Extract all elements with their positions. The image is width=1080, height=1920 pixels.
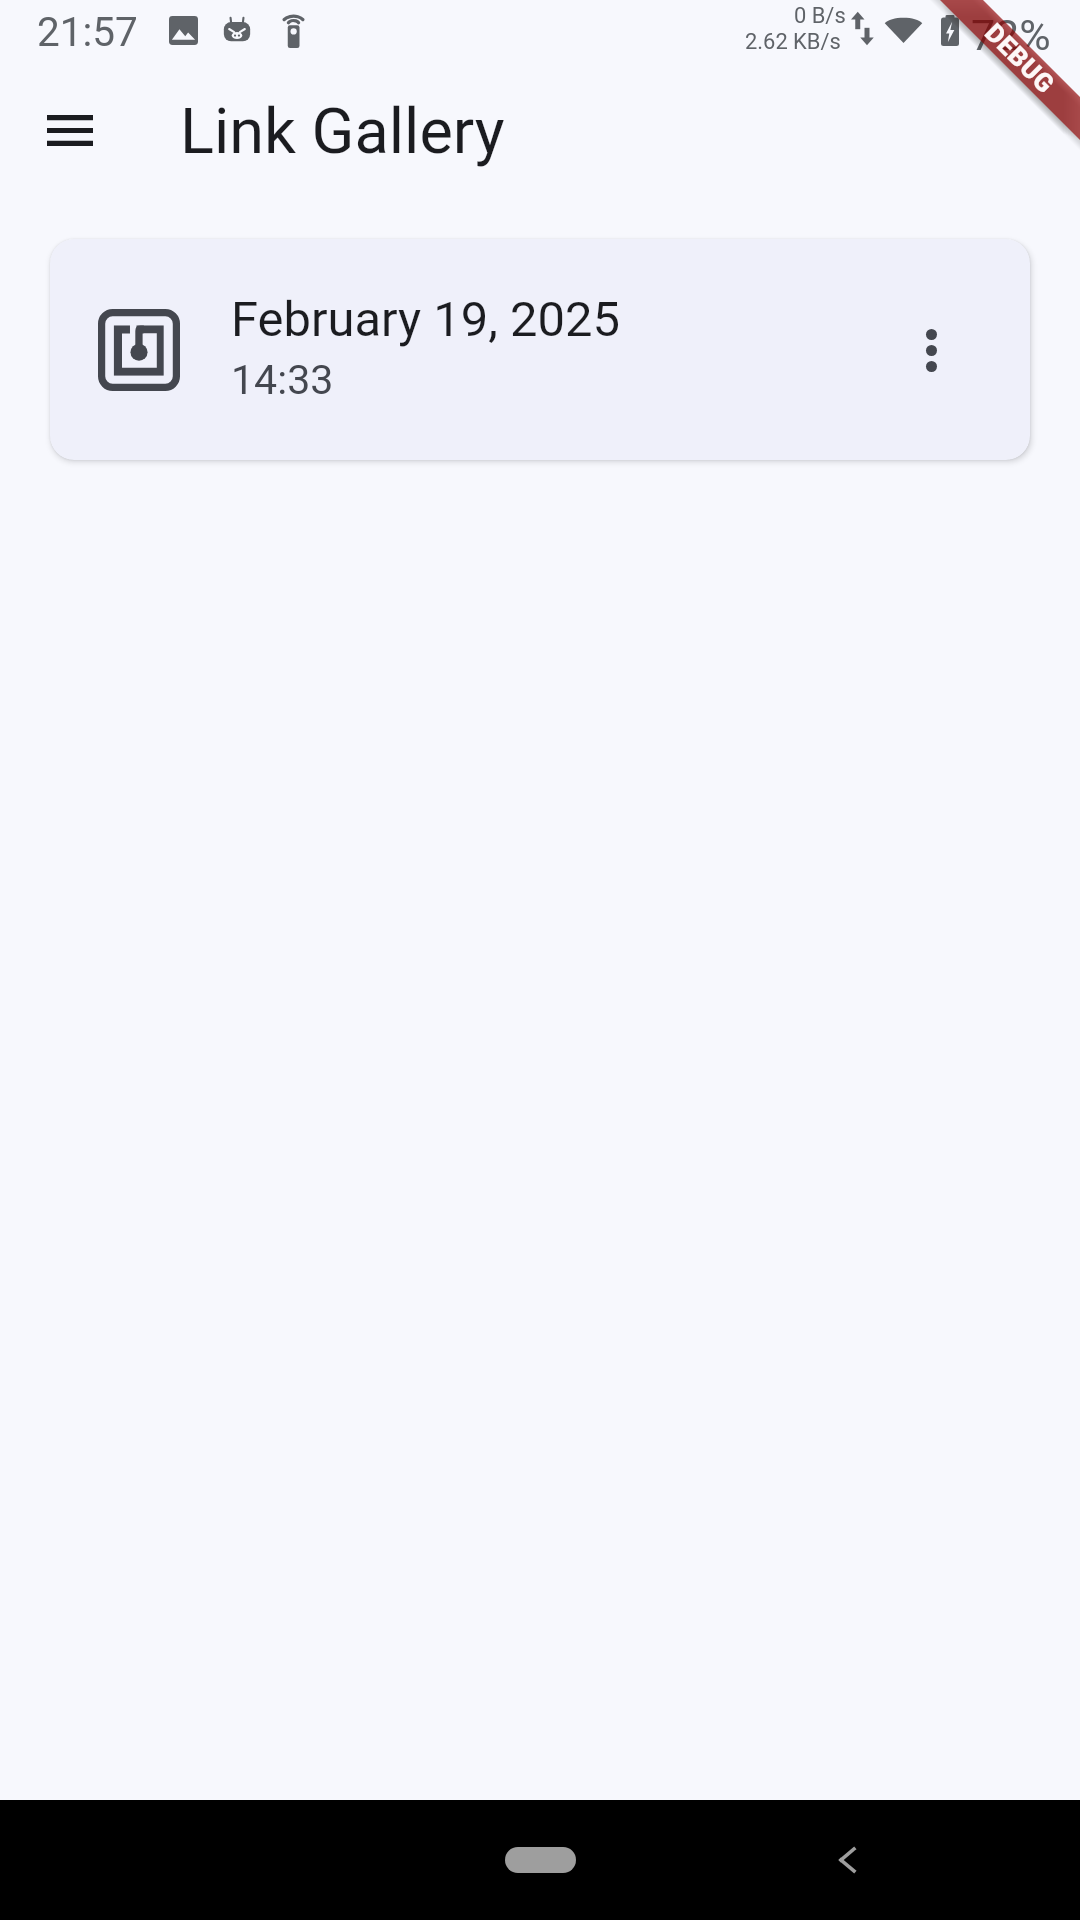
staticText: 21:57 xyxy=(37,8,138,55)
button[interactable]: Open navigation menu xyxy=(22,82,118,178)
staticText: Link Gallery xyxy=(180,95,505,169)
staticText: February 19, 2025 xyxy=(231,291,620,348)
button[interactable]: Back xyxy=(802,1815,892,1905)
staticText: 14:33 xyxy=(231,356,334,404)
button[interactable]: February 19, 2025 xyxy=(50,239,1030,460)
staticText: 72% xyxy=(971,10,1051,60)
button[interactable]: Home xyxy=(505,1847,576,1873)
staticText: 2.62 KB/s xyxy=(745,29,841,55)
button[interactable]: More options xyxy=(865,284,997,416)
staticText: 0 B/s xyxy=(794,3,846,29)
